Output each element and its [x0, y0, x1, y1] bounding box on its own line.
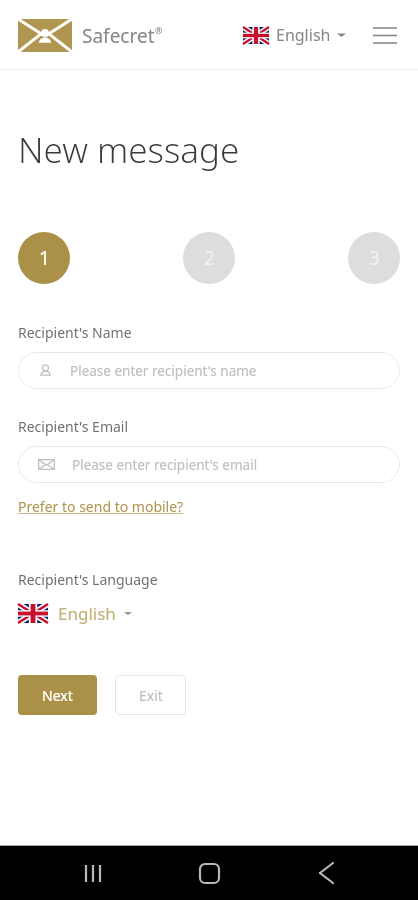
staticText: Next	[42, 686, 73, 705]
staticText: Prefer to send to mobile?	[18, 497, 184, 516]
button[interactable]: Next	[18, 675, 97, 715]
button[interactable]: 1	[18, 232, 70, 284]
staticText: Exit	[139, 686, 163, 705]
button[interactable]: 2	[183, 232, 235, 284]
staticText: English	[58, 602, 116, 625]
button[interactable]: Back	[302, 849, 350, 897]
button[interactable]: Recent apps	[69, 849, 117, 897]
staticText: English	[276, 24, 331, 46]
staticText: Recipient's Language	[18, 570, 158, 589]
staticText: Please enter recipient's name	[70, 362, 257, 380]
button[interactable]: Menu	[368, 18, 402, 52]
button[interactable]: 3	[348, 232, 400, 284]
button[interactable]: Please enter recipient's name	[18, 352, 400, 389]
staticText: Safecret	[82, 23, 155, 49]
staticText: Please enter recipient's email	[72, 456, 258, 474]
staticText: Recipient's Name	[18, 323, 132, 342]
button[interactable]: Home	[185, 849, 233, 897]
staticText: Recipient's Email	[18, 417, 129, 436]
button[interactable]: English	[241, 24, 348, 46]
button[interactable]: Prefer to send to mobile?	[18, 497, 184, 516]
staticText: 1	[39, 245, 50, 271]
button[interactable]: Exit	[115, 675, 186, 715]
button[interactable]: Please enter recipient's email	[18, 446, 400, 483]
staticText: 2	[204, 245, 215, 271]
staticText: 3	[369, 245, 380, 271]
staticText: New message	[18, 126, 240, 174]
staticText: ®	[155, 24, 163, 36]
button[interactable]: English	[18, 602, 132, 625]
button[interactable]: Safecret	[18, 19, 163, 52]
